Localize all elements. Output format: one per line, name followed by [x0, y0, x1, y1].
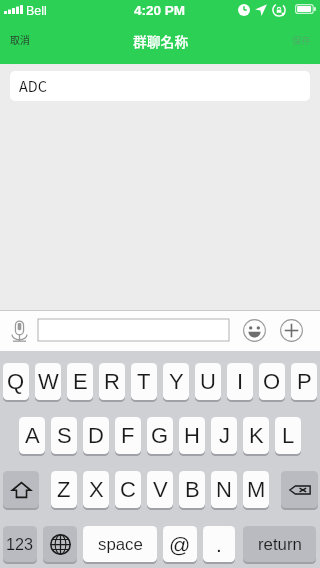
staticText: O — [263, 369, 281, 394]
button[interactable]: V — [0, 351, 26, 389]
staticText: S — [57, 423, 72, 448]
button[interactable]: Y — [0, 351, 26, 389]
staticText: D — [88, 423, 104, 448]
button[interactable]: L — [0, 351, 26, 389]
staticText: Q — [7, 369, 25, 394]
staticText: 保存 — [292, 33, 311, 46]
button[interactable]: More — [276, 315, 306, 345]
staticText: H — [184, 423, 200, 448]
button[interactable]: A — [0, 351, 26, 389]
button[interactable]: 取消 — [10, 33, 30, 47]
button[interactable]: @ — [0, 351, 34, 388]
staticText: K — [249, 423, 264, 448]
button[interactable]: D — [0, 351, 26, 389]
button[interactable]: C — [0, 351, 26, 389]
staticText: 群聊名称 — [133, 31, 189, 51]
staticText: B — [185, 477, 200, 502]
staticText: A — [25, 423, 40, 448]
button[interactable]: Voice input — [8, 316, 31, 346]
staticText: L — [282, 423, 295, 448]
staticText: Z — [57, 477, 71, 502]
staticText: R — [104, 369, 120, 394]
staticText: 4:20 PM — [134, 3, 186, 18]
staticText: C — [120, 477, 136, 502]
button[interactable]: Shift — [0, 351, 36, 389]
staticText: 123 — [6, 535, 34, 553]
button[interactable]: B — [0, 351, 26, 389]
staticText: E — [73, 369, 88, 394]
button[interactable]: R — [0, 351, 26, 389]
staticText: X — [89, 477, 104, 502]
button[interactable]: Z — [0, 351, 26, 389]
staticText: J — [219, 423, 230, 448]
staticText: ADC — [19, 75, 48, 96]
button[interactable]: Change keyboard — [0, 351, 34, 388]
button[interactable]: N — [0, 351, 26, 389]
button[interactable]: I — [0, 351, 26, 389]
staticText: I — [237, 369, 244, 394]
button[interactable]: space — [0, 351, 74, 388]
staticText: 取消 — [10, 33, 30, 47]
staticText: G — [151, 423, 169, 448]
button[interactable]: Emoji — [239, 315, 269, 345]
staticText: W — [38, 369, 59, 394]
button[interactable]: P — [0, 351, 26, 389]
staticText: P — [297, 369, 312, 394]
button[interactable]: M — [0, 351, 26, 389]
staticText: U — [200, 369, 216, 394]
staticText: M — [247, 477, 266, 502]
staticText: @ — [169, 533, 191, 556]
staticText: T — [137, 369, 151, 394]
staticText: V — [153, 477, 168, 502]
button[interactable]: W — [0, 351, 26, 389]
button[interactable]: J — [0, 351, 26, 389]
button[interactable]: U — [0, 351, 26, 389]
button[interactable]: . — [0, 351, 32, 388]
button[interactable]: T — [0, 351, 26, 389]
button[interactable]: Q — [0, 351, 26, 389]
button[interactable]: F — [0, 351, 26, 389]
staticText: return — [258, 535, 302, 554]
button[interactable]: 保存 — [292, 33, 311, 46]
button[interactable]: S — [0, 351, 26, 389]
button[interactable]: O — [0, 351, 26, 389]
button[interactable]: H — [0, 351, 26, 389]
staticText: space — [98, 535, 143, 554]
button[interactable]: X — [0, 351, 26, 389]
staticText: . — [216, 533, 222, 556]
button[interactable]: Backspace — [0, 351, 37, 389]
button[interactable] — [38, 319, 229, 341]
button[interactable]: K — [0, 351, 26, 389]
button[interactable]: E — [0, 351, 26, 389]
button[interactable]: G — [0, 351, 26, 389]
staticText: Y — [169, 369, 184, 394]
button[interactable]: return — [0, 351, 73, 388]
staticText: F — [121, 423, 135, 448]
staticText: Bell — [26, 4, 47, 18]
button[interactable]: ADC — [10, 71, 310, 101]
button[interactable]: 123 — [0, 351, 34, 388]
staticText: N — [216, 477, 232, 502]
